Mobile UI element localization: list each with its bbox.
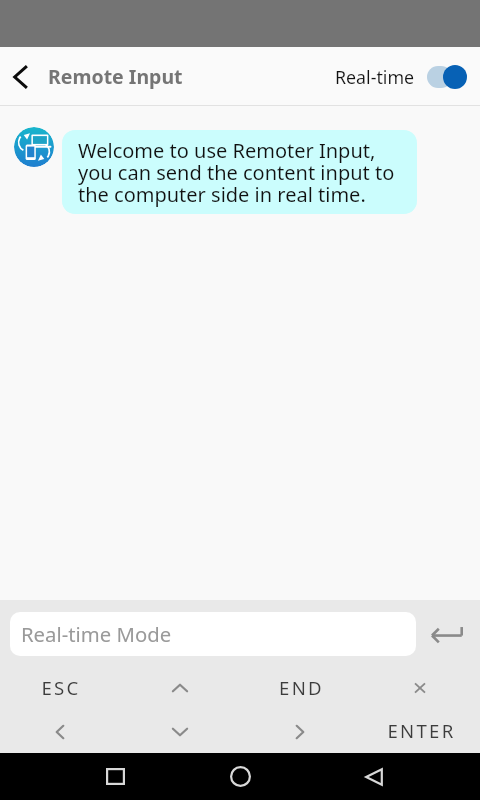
button[interactable]: Real-time Mode	[10, 612, 416, 656]
button[interactable]: Down	[120, 710, 240, 753]
button[interactable]: ENTER	[360, 710, 480, 753]
staticText: ESC	[41, 675, 81, 700]
button[interactable]: Back	[349, 753, 399, 800]
staticText: Real-time	[335, 65, 415, 89]
button[interactable]: Home	[215, 753, 265, 800]
button[interactable]: Real-time	[335, 64, 480, 90]
button[interactable]: END	[240, 666, 360, 710]
button[interactable]: ESC	[0, 666, 120, 710]
staticText: Remote Input	[48, 63, 183, 90]
button[interactable]: Right	[240, 710, 360, 753]
button[interactable]: Back	[0, 48, 48, 106]
staticText: Real-time Mode	[21, 620, 172, 648]
staticText: Welcome to use Remoter Input, you can se…	[78, 137, 395, 208]
button[interactable]: Close	[360, 666, 480, 710]
staticText: END	[279, 675, 324, 700]
button[interactable]: Left	[0, 710, 120, 753]
button[interactable]: Enter	[416, 612, 480, 655]
button[interactable]: Up	[120, 666, 240, 710]
button[interactable]: Recent apps	[90, 753, 140, 800]
staticText: ENTER	[387, 718, 456, 743]
